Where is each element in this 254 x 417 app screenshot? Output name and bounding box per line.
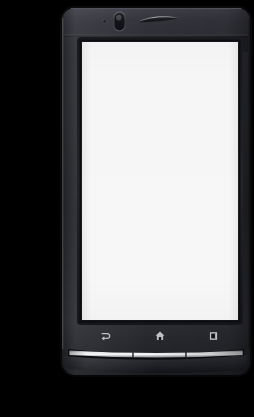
button[interactable]: Phone device preview	[0, 0, 254, 417]
